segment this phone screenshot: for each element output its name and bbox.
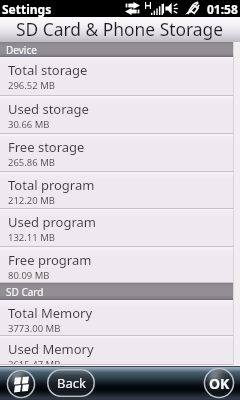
- staticText: Used storage: [8, 100, 89, 118]
- staticText: SD Card: [6, 285, 44, 299]
- button[interactable]: Back: [47, 369, 95, 397]
- button[interactable]: Total storage: [0, 57, 240, 96]
- button[interactable]: Used Memory: [0, 336, 240, 365]
- button[interactable]: Free storage: [0, 134, 240, 172]
- staticText: 265.86 MB: [8, 156, 55, 169]
- staticText: OK: [209, 374, 230, 393]
- staticText: Total storage: [8, 61, 88, 79]
- button[interactable]: Total Memory: [0, 300, 240, 336]
- staticText: 2615.47 MB: [8, 358, 61, 371]
- staticText: Settings: [2, 1, 52, 17]
- staticText: 3773.00 MB: [8, 322, 61, 335]
- staticText: Back: [57, 374, 86, 392]
- button[interactable]: Start: [7, 370, 35, 398]
- button[interactable]: Free program: [0, 247, 240, 283]
- staticText: Total program: [8, 176, 95, 194]
- staticText: 80.09 MB: [8, 269, 50, 282]
- staticText: Used Memory: [8, 340, 94, 358]
- staticText: 01:58: [207, 1, 238, 17]
- button[interactable]: Used storage: [0, 96, 240, 134]
- staticText: Free storage: [8, 138, 85, 156]
- button[interactable]: Used program: [0, 209, 240, 247]
- staticText: Device: [6, 43, 37, 57]
- staticText: 132.11 MB: [8, 231, 55, 244]
- button[interactable]: OK: [204, 368, 234, 398]
- staticText: Free program: [8, 251, 92, 269]
- button[interactable]: Total program: [0, 172, 240, 209]
- staticText: Used program: [8, 213, 96, 231]
- staticText: SD Card & Phone Storage: [16, 17, 224, 41]
- staticText: 30.66 MB: [8, 118, 50, 131]
- staticText: 212.20 MB: [8, 194, 55, 207]
- staticText: Total Memory: [8, 304, 93, 322]
- staticText: 296.52 MB: [8, 79, 55, 92]
